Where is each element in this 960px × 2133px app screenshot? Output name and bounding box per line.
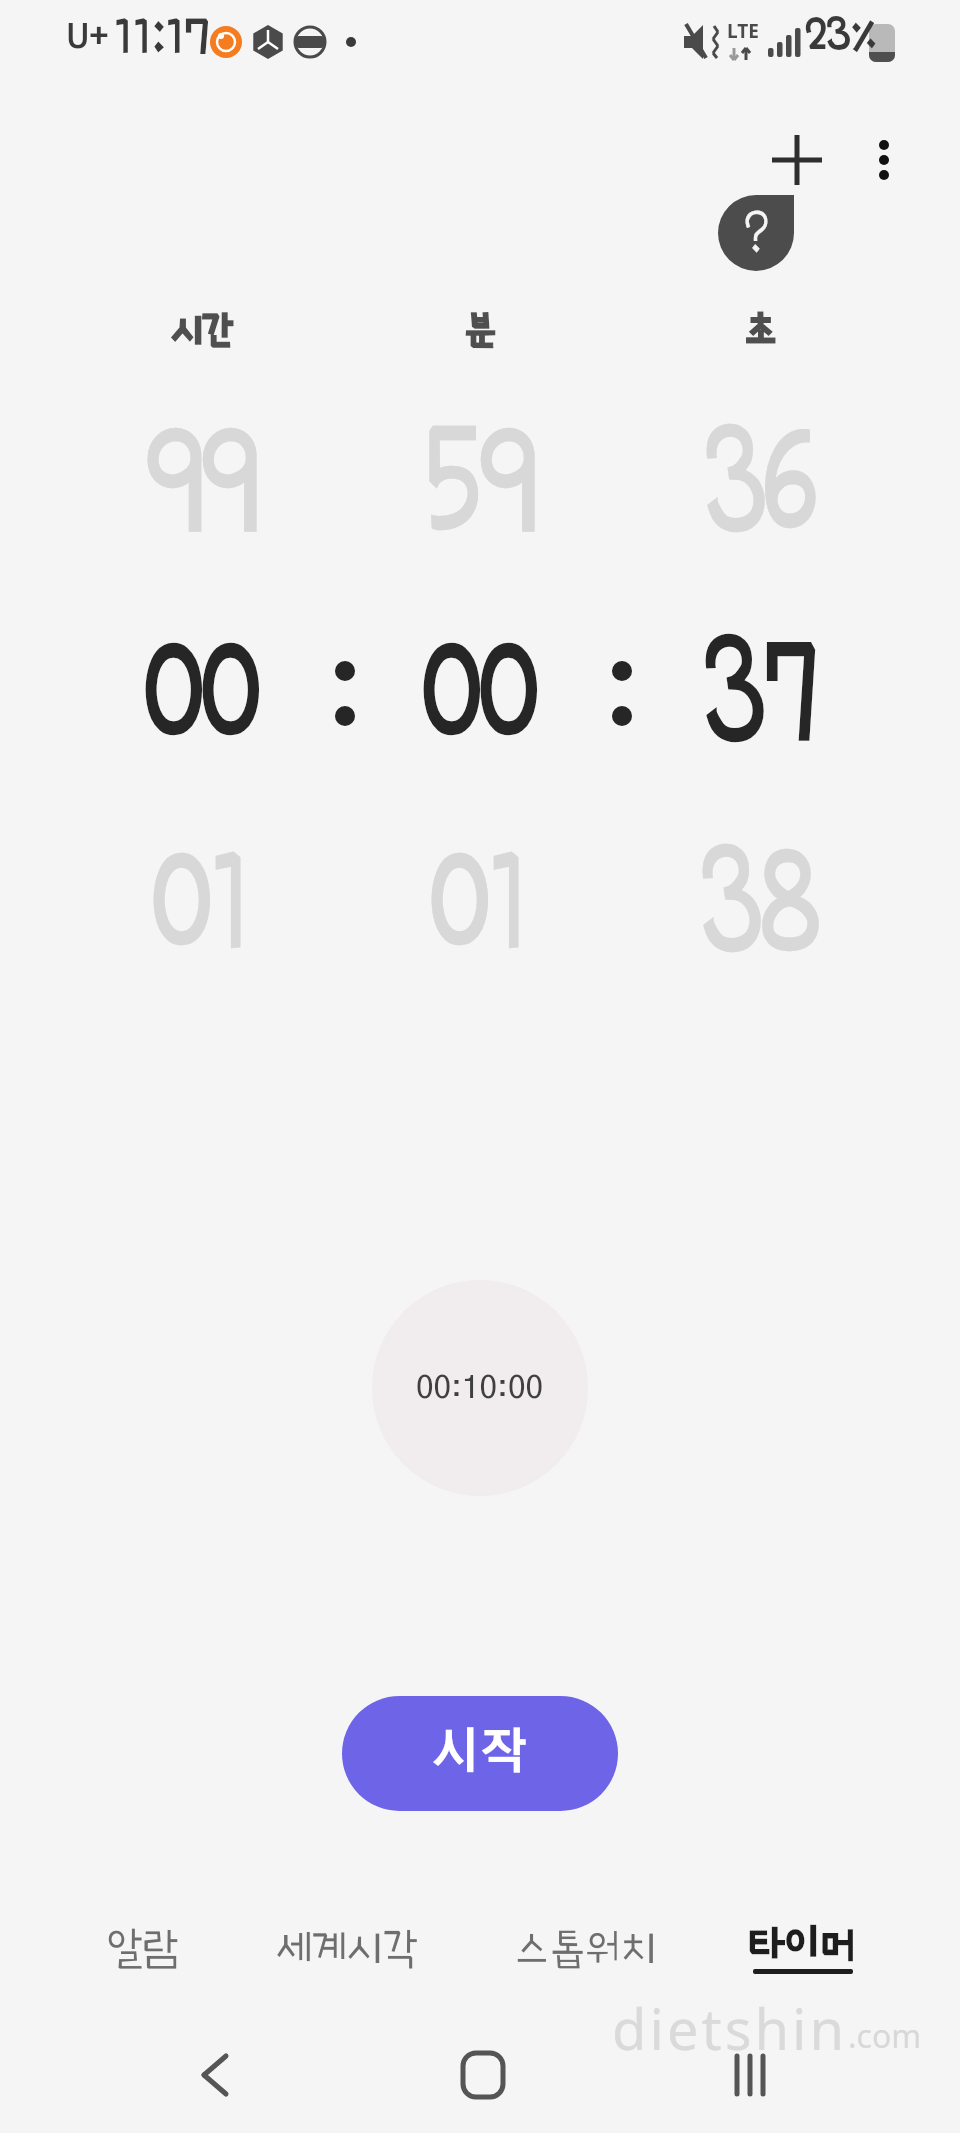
button[interactable] bbox=[710, 2035, 790, 2115]
staticText: 초 bbox=[745, 311, 776, 349]
staticText: 01 bbox=[431, 824, 530, 976]
staticText: 세계시각 bbox=[276, 1926, 418, 1970]
staticText: U+ bbox=[66, 22, 109, 54]
staticText: 99 bbox=[147, 404, 258, 556]
staticText: 01 bbox=[153, 824, 252, 976]
button[interactable] bbox=[443, 2035, 523, 2115]
staticText: 00:10:00 bbox=[416, 1373, 544, 1404]
staticText: 23% bbox=[806, 11, 878, 57]
staticText: 23% bbox=[806, 11, 878, 57]
staticText: 01 bbox=[153, 824, 252, 976]
staticText: 분 bbox=[465, 311, 496, 349]
staticText: 00 bbox=[423, 614, 537, 766]
staticText: 타이머 bbox=[749, 1923, 856, 1967]
staticText: 01 bbox=[431, 824, 530, 976]
staticText: 00 bbox=[423, 614, 537, 766]
staticText: 초 bbox=[745, 311, 776, 349]
staticText: 알람 bbox=[107, 1926, 178, 1970]
button[interactable] bbox=[862, 132, 906, 188]
staticText: 38 bbox=[700, 824, 820, 976]
staticText: 38 bbox=[700, 824, 820, 976]
staticText: 11:17 bbox=[114, 9, 209, 63]
staticText: 시작 bbox=[432, 1730, 528, 1778]
staticText: 00 bbox=[145, 614, 259, 766]
staticText: 분 bbox=[465, 311, 496, 349]
staticText: 스톱워치 bbox=[514, 1926, 656, 1970]
button[interactable]: ? bbox=[718, 195, 794, 271]
staticText: 00 bbox=[145, 614, 259, 766]
staticText: 타이머 bbox=[749, 1923, 856, 1967]
button[interactable] bbox=[174, 2035, 254, 2115]
staticText: 37 bbox=[703, 614, 817, 766]
button[interactable]: 타이머 bbox=[712, 1903, 892, 1993]
staticText: 시간 bbox=[171, 311, 233, 349]
button[interactable]: 스톱워치 bbox=[495, 1903, 675, 1993]
button[interactable]: 시작 bbox=[342, 1696, 618, 1811]
staticText: 11:17 bbox=[114, 9, 209, 63]
staticText: 59 bbox=[425, 404, 536, 556]
staticText: dietshin bbox=[612, 1990, 848, 2066]
staticText: .com bbox=[848, 2014, 922, 2058]
button[interactable]: 알람 bbox=[52, 1903, 232, 1993]
button[interactable] bbox=[769, 132, 825, 188]
staticText: 36 bbox=[704, 404, 816, 556]
staticText: 99 bbox=[147, 404, 258, 556]
button[interactable]: 세계시각 bbox=[257, 1903, 437, 1993]
staticText: 36 bbox=[704, 404, 816, 556]
button[interactable]: 00:10:00 bbox=[372, 1280, 588, 1496]
staticText: 59 bbox=[425, 404, 536, 556]
staticText: LTE bbox=[727, 18, 759, 44]
staticText: 37 bbox=[703, 614, 817, 766]
staticText: ? bbox=[743, 205, 769, 261]
staticText: 시간 bbox=[171, 311, 233, 349]
